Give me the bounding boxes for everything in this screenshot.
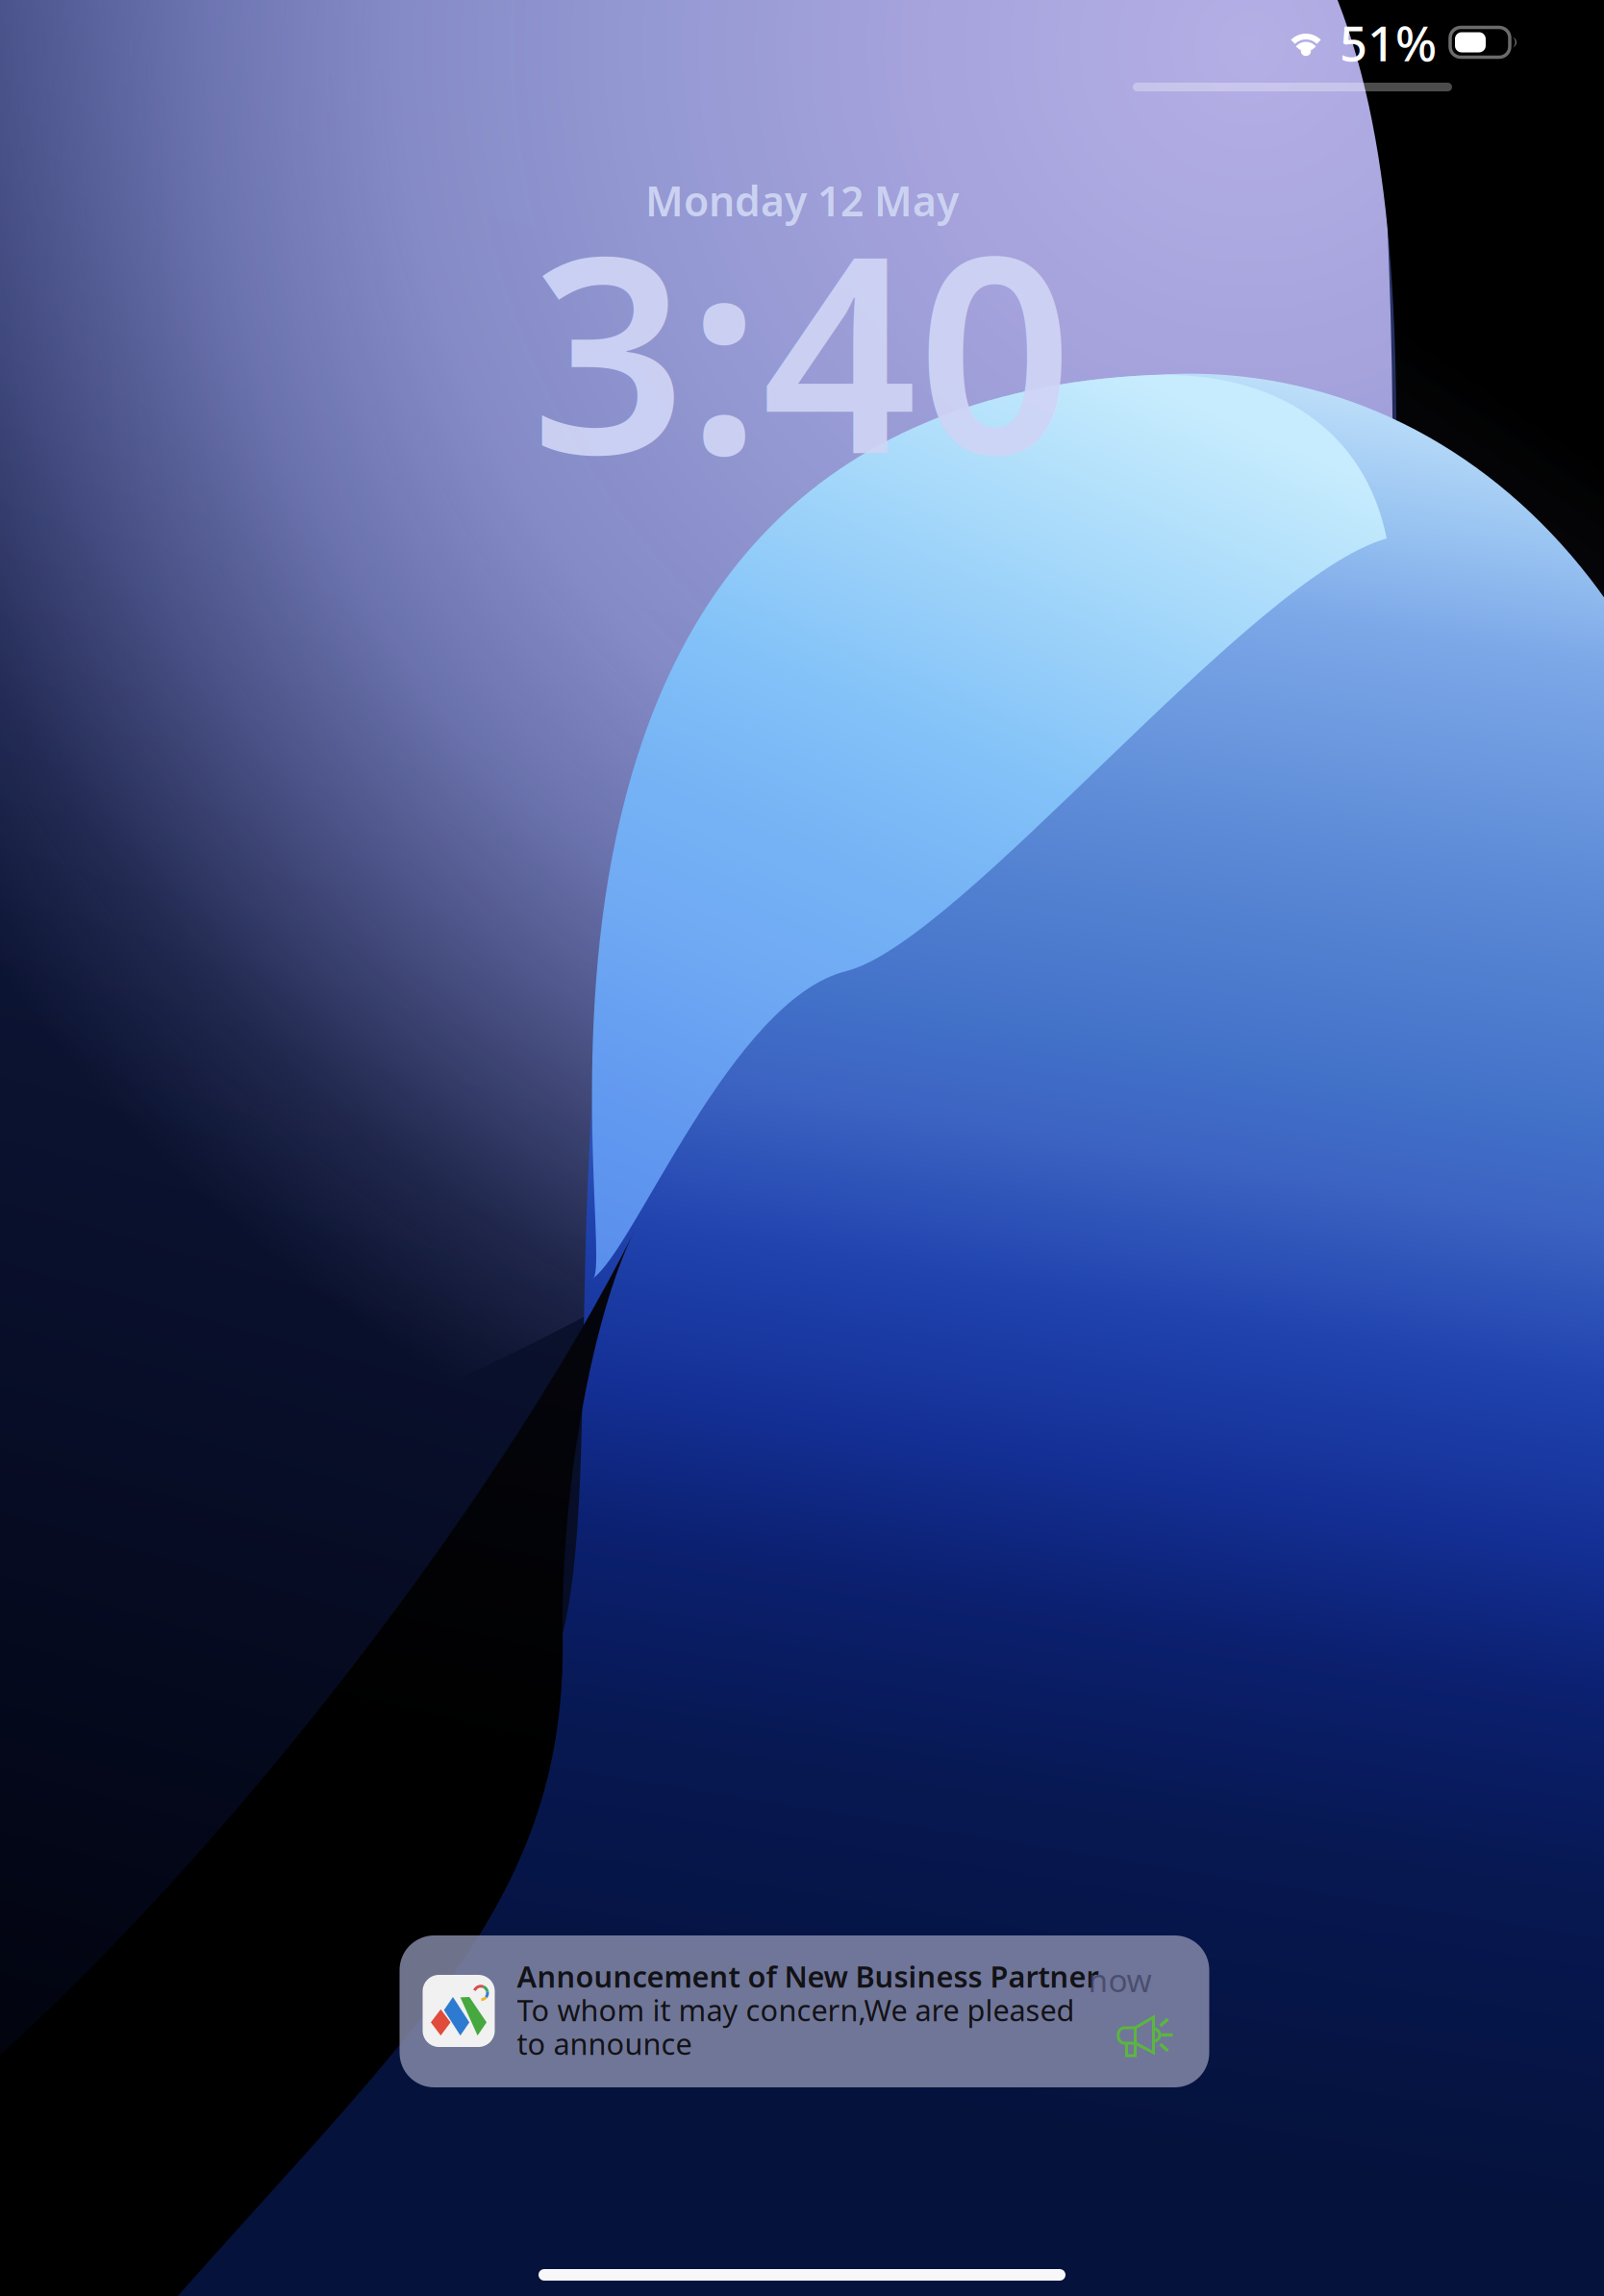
staticText: 51% bbox=[1340, 10, 1437, 75]
staticText: Announcement of New Business Partner bbox=[517, 1957, 1099, 1996]
staticText: Monday 12 May bbox=[645, 173, 959, 228]
button[interactable]: Announcement of New Business Partner bbox=[395, 1935, 1209, 2087]
staticText: to announce bbox=[517, 2024, 692, 2063]
staticText: now bbox=[1088, 1959, 1152, 2001]
staticText: To whom it may concern,We are pleased bbox=[517, 1990, 1075, 2029]
staticText: 3:40 bbox=[531, 167, 1073, 528]
